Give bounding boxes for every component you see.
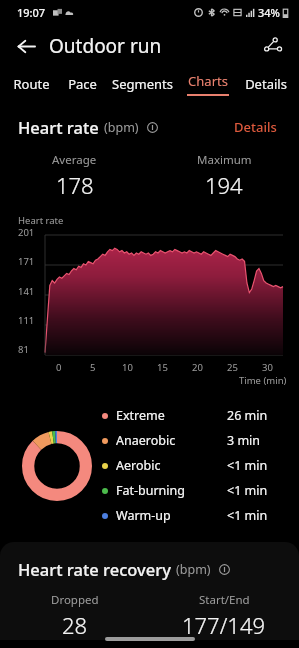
staticText: Details — [234, 118, 277, 136]
staticText: <1 min — [227, 457, 285, 474]
staticText: 15 — [157, 361, 168, 374]
staticText: 25 — [227, 361, 238, 374]
button[interactable]: Fat-burning — [102, 478, 285, 503]
staticText: Route — [13, 75, 50, 93]
staticText: <1 min — [227, 482, 285, 499]
button[interactable]: Info — [215, 560, 233, 578]
staticText: Details — [245, 75, 287, 93]
staticText: 178 — [56, 170, 94, 200]
staticText: 0 — [56, 361, 62, 374]
staticText: 171 — [18, 255, 35, 268]
staticText: Average — [52, 152, 97, 168]
staticText: Start/End — [199, 592, 250, 608]
button[interactable]: Anaerobic — [102, 428, 285, 453]
button[interactable]: Route — [4, 68, 58, 100]
staticText: Time (min) — [239, 374, 287, 387]
staticText: Extreme — [116, 407, 227, 424]
staticText: 201 — [18, 226, 35, 239]
staticText: Aerobic — [116, 457, 227, 474]
button[interactable]: Details — [230, 114, 281, 140]
staticText: Segments — [112, 75, 173, 93]
button[interactable]: Warm-up — [102, 503, 285, 528]
staticText: Heart rate recovery — [18, 558, 171, 580]
staticText: (bpm) — [176, 561, 211, 578]
staticText: 30 — [262, 361, 273, 374]
button[interactable]: Pace — [58, 68, 106, 100]
button[interactable]: Details — [237, 68, 295, 100]
staticText: 34% — [258, 5, 280, 20]
staticText: 3 min — [227, 432, 285, 449]
staticText: <1 min — [227, 507, 285, 524]
button[interactable]: Info — [143, 118, 161, 136]
staticText: 81 — [18, 343, 29, 356]
button[interactable]: Back — [8, 28, 44, 64]
staticText: 28 — [62, 610, 88, 640]
button[interactable]: Share — [255, 28, 291, 64]
staticText: Outdoor run — [49, 33, 162, 59]
staticText: (bpm) — [104, 119, 139, 136]
staticText: 141 — [18, 285, 35, 298]
staticText: Heart rate — [18, 214, 64, 227]
staticText: Maximum — [197, 152, 252, 168]
staticText: 26 min — [227, 407, 285, 424]
button[interactable]: Aerobic — [102, 453, 285, 478]
staticText: Charts — [188, 72, 228, 90]
button[interactable]: Segments — [106, 68, 179, 100]
staticText: 177/149 — [182, 610, 266, 640]
staticText: 194 — [205, 170, 243, 200]
staticText: 10 — [122, 361, 133, 374]
staticText: 20 — [192, 361, 203, 374]
staticText: 19:07 — [17, 5, 46, 20]
staticText: Fat-burning — [116, 482, 227, 499]
staticText: Warm-up — [116, 507, 227, 524]
staticText: Anaerobic — [116, 432, 227, 449]
button[interactable]: Charts — [179, 68, 237, 100]
staticText: 5 — [90, 361, 96, 374]
staticText: 111 — [18, 314, 35, 327]
staticText: Heart rate — [18, 116, 99, 138]
button[interactable]: Extreme — [102, 403, 285, 428]
staticText: Dropped — [51, 592, 99, 608]
staticText: Pace — [68, 75, 97, 93]
